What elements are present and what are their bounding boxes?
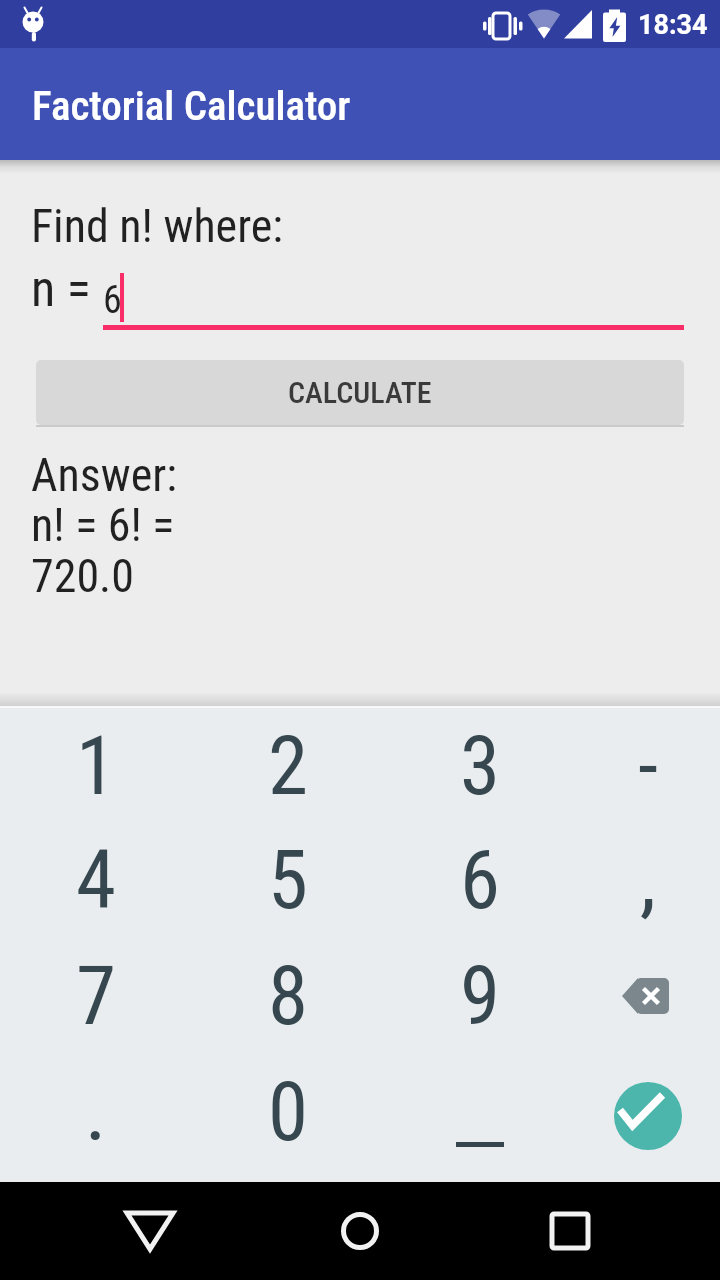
- staticText: Answer: n! = 6! = 720.0: [31, 448, 177, 604]
- staticText: 7: [76, 949, 116, 1044]
- button[interactable]: [538, 1199, 602, 1263]
- staticText: 3: [460, 719, 500, 814]
- staticText: 6: [103, 278, 122, 323]
- staticText: 5: [268, 833, 308, 928]
- button[interactable]: CALCULATE: [36, 360, 684, 425]
- button[interactable]: 4: [16, 822, 176, 938]
- button[interactable]: .: [16, 1054, 176, 1170]
- staticText: 2: [268, 719, 308, 814]
- staticText: 18:34: [638, 9, 708, 41]
- button[interactable]: [400, 1054, 560, 1170]
- staticText: -: [638, 719, 659, 814]
- button[interactable]: 0: [208, 1054, 368, 1170]
- button[interactable]: 8: [208, 938, 368, 1054]
- staticText: CALCULATE: [288, 375, 432, 410]
- button[interactable]: -: [568, 708, 720, 824]
- staticText: n =: [31, 260, 103, 319]
- button[interactable]: [328, 1199, 392, 1263]
- staticText: 1: [76, 719, 116, 814]
- button[interactable]: 5: [208, 822, 368, 938]
- button[interactable]: [118, 1199, 182, 1263]
- button[interactable]: 3: [400, 708, 560, 824]
- staticText: 8: [268, 949, 308, 1044]
- button[interactable]: [614, 1082, 682, 1150]
- button[interactable]: [576, 938, 720, 1054]
- staticText: ,: [640, 833, 656, 928]
- button[interactable]: 2: [208, 708, 368, 824]
- staticText: 9: [460, 949, 500, 1044]
- staticText: 6: [460, 833, 500, 928]
- staticText: 4: [76, 833, 116, 928]
- staticText: .: [85, 1065, 107, 1160]
- button[interactable]: 7: [16, 938, 176, 1054]
- button[interactable]: 9: [400, 938, 560, 1054]
- button[interactable]: 1: [16, 708, 176, 824]
- staticText: Factorial Calculator: [32, 82, 351, 130]
- button[interactable]: ,: [568, 822, 720, 938]
- staticText: Find n! where:: [31, 199, 284, 253]
- button[interactable]: 6: [400, 822, 560, 938]
- staticText: 0: [268, 1065, 308, 1160]
